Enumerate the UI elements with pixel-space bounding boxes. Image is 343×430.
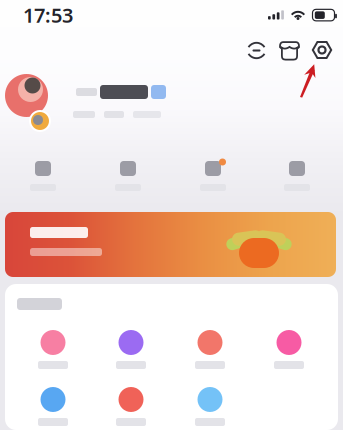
- button[interactable]: Settings: [312, 40, 332, 60]
- button[interactable]: Service: [99, 387, 163, 430]
- button[interactable]: Quick action: [10, 160, 76, 200]
- button[interactable]: Quick action: [264, 160, 330, 200]
- button[interactable]: Quick action: [95, 160, 161, 200]
- button[interactable]: Service: [21, 387, 85, 430]
- button[interactable]: Quick action: [180, 160, 246, 200]
- button[interactable]: [0, 70, 343, 132]
- button[interactable]: Service: [21, 330, 85, 376]
- button[interactable]: Service: [178, 387, 242, 430]
- button[interactable]: Promotion banner: [5, 212, 336, 277]
- staticText: 17:53: [23, 2, 73, 28]
- button[interactable]: Orders: [279, 40, 300, 61]
- button[interactable]: Service: [99, 330, 163, 376]
- button[interactable]: Scan: [246, 40, 267, 61]
- button[interactable]: Service: [257, 330, 321, 376]
- button[interactable]: Service: [178, 330, 242, 376]
